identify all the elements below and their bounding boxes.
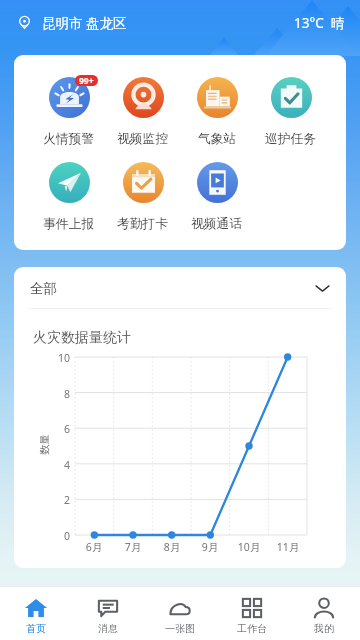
staticText: 7月 [115, 540, 151, 554]
button[interactable]: 考勤打卡 [106, 162, 180, 232]
button[interactable]: 消息 [72, 586, 144, 640]
staticText: 10月 [231, 540, 267, 554]
staticText: 全部 [30, 280, 57, 297]
staticText: 11月 [270, 540, 306, 554]
button[interactable]: 全部 [14, 267, 346, 310]
other: 我的 [312, 596, 336, 620]
button[interactable]: 99+ [32, 77, 106, 147]
staticText: 99+ [79, 75, 94, 86]
staticText: 消息 [98, 622, 118, 635]
other: 工作台 [240, 596, 264, 620]
staticText: 巡护任务 [265, 131, 317, 147]
staticText: 考勤打卡 [117, 216, 169, 232]
staticText: 0 [40, 529, 70, 543]
staticText: 数量 [37, 424, 50, 464]
staticText: 火灾数据量统计 [33, 329, 131, 347]
staticText: 视频通话 [191, 216, 243, 232]
staticText: 4 [40, 458, 70, 472]
button[interactable]: 视频通话 [180, 162, 254, 232]
staticText: 昆明市 盘龙区 [42, 14, 127, 32]
staticText: 视频监控 [117, 131, 169, 147]
staticText: 首页 [26, 622, 46, 635]
staticText: 我的 [314, 622, 334, 635]
staticText: 工作台 [237, 622, 267, 635]
staticText: 一张图 [165, 622, 195, 635]
button[interactable]: 视频监控 [106, 77, 180, 147]
button[interactable]: 事件上报 [32, 162, 106, 232]
other: 消息 [96, 596, 120, 620]
staticText: 8月 [154, 540, 190, 554]
staticText: 火情预警 [43, 131, 95, 147]
staticText: 10 [40, 351, 70, 365]
staticText: 2 [40, 493, 70, 507]
button[interactable]: 我的 [288, 586, 360, 640]
button[interactable]: 工作台 [216, 586, 288, 640]
button[interactable]: 气象站 [180, 77, 254, 147]
staticText: 6 [40, 422, 70, 436]
other: 首页 [24, 596, 48, 620]
button[interactable]: 首页 [0, 586, 72, 640]
other: 一张图 [168, 596, 192, 620]
staticText: 8 [40, 387, 70, 401]
button[interactable]: 一张图 [144, 586, 216, 640]
staticText: 事件上报 [43, 216, 95, 232]
staticText: 9月 [192, 540, 228, 554]
staticText: 6月 [76, 540, 112, 554]
staticText: 13°C 晴 [294, 14, 345, 32]
button[interactable]: 巡护任务 [254, 77, 328, 147]
staticText: 气象站 [198, 131, 237, 147]
